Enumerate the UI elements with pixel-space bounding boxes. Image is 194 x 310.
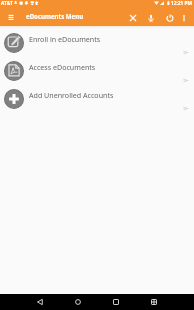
button[interactable]: Enroll in eDocuments bbox=[0, 31, 194, 59]
staticText: AT&T bbox=[1, 0, 13, 6]
button[interactable]: Home bbox=[59, 294, 97, 310]
staticText: eDocuments Menu bbox=[26, 12, 84, 20]
button[interactable]: More options bbox=[176, 10, 192, 26]
staticText: Enroll in eDocuments bbox=[29, 34, 101, 44]
button[interactable]: Access eDocuments bbox=[0, 59, 194, 87]
button[interactable]: Recent apps bbox=[97, 294, 135, 310]
button[interactable]: Split screen bbox=[135, 294, 173, 310]
button[interactable]: Voice search bbox=[143, 10, 159, 26]
staticText: Add Unenrolled Accounts bbox=[29, 90, 114, 100]
button[interactable]: Back bbox=[21, 294, 59, 310]
staticText: Access eDocuments bbox=[29, 62, 96, 72]
button[interactable]: Add Unenrolled Accounts bbox=[0, 87, 194, 115]
staticText: 12:21 PM bbox=[171, 0, 193, 6]
button[interactable]: Power bbox=[162, 10, 178, 26]
button[interactable]: Navigation menu bbox=[2, 6, 20, 26]
button[interactable]: Close bbox=[125, 10, 141, 26]
